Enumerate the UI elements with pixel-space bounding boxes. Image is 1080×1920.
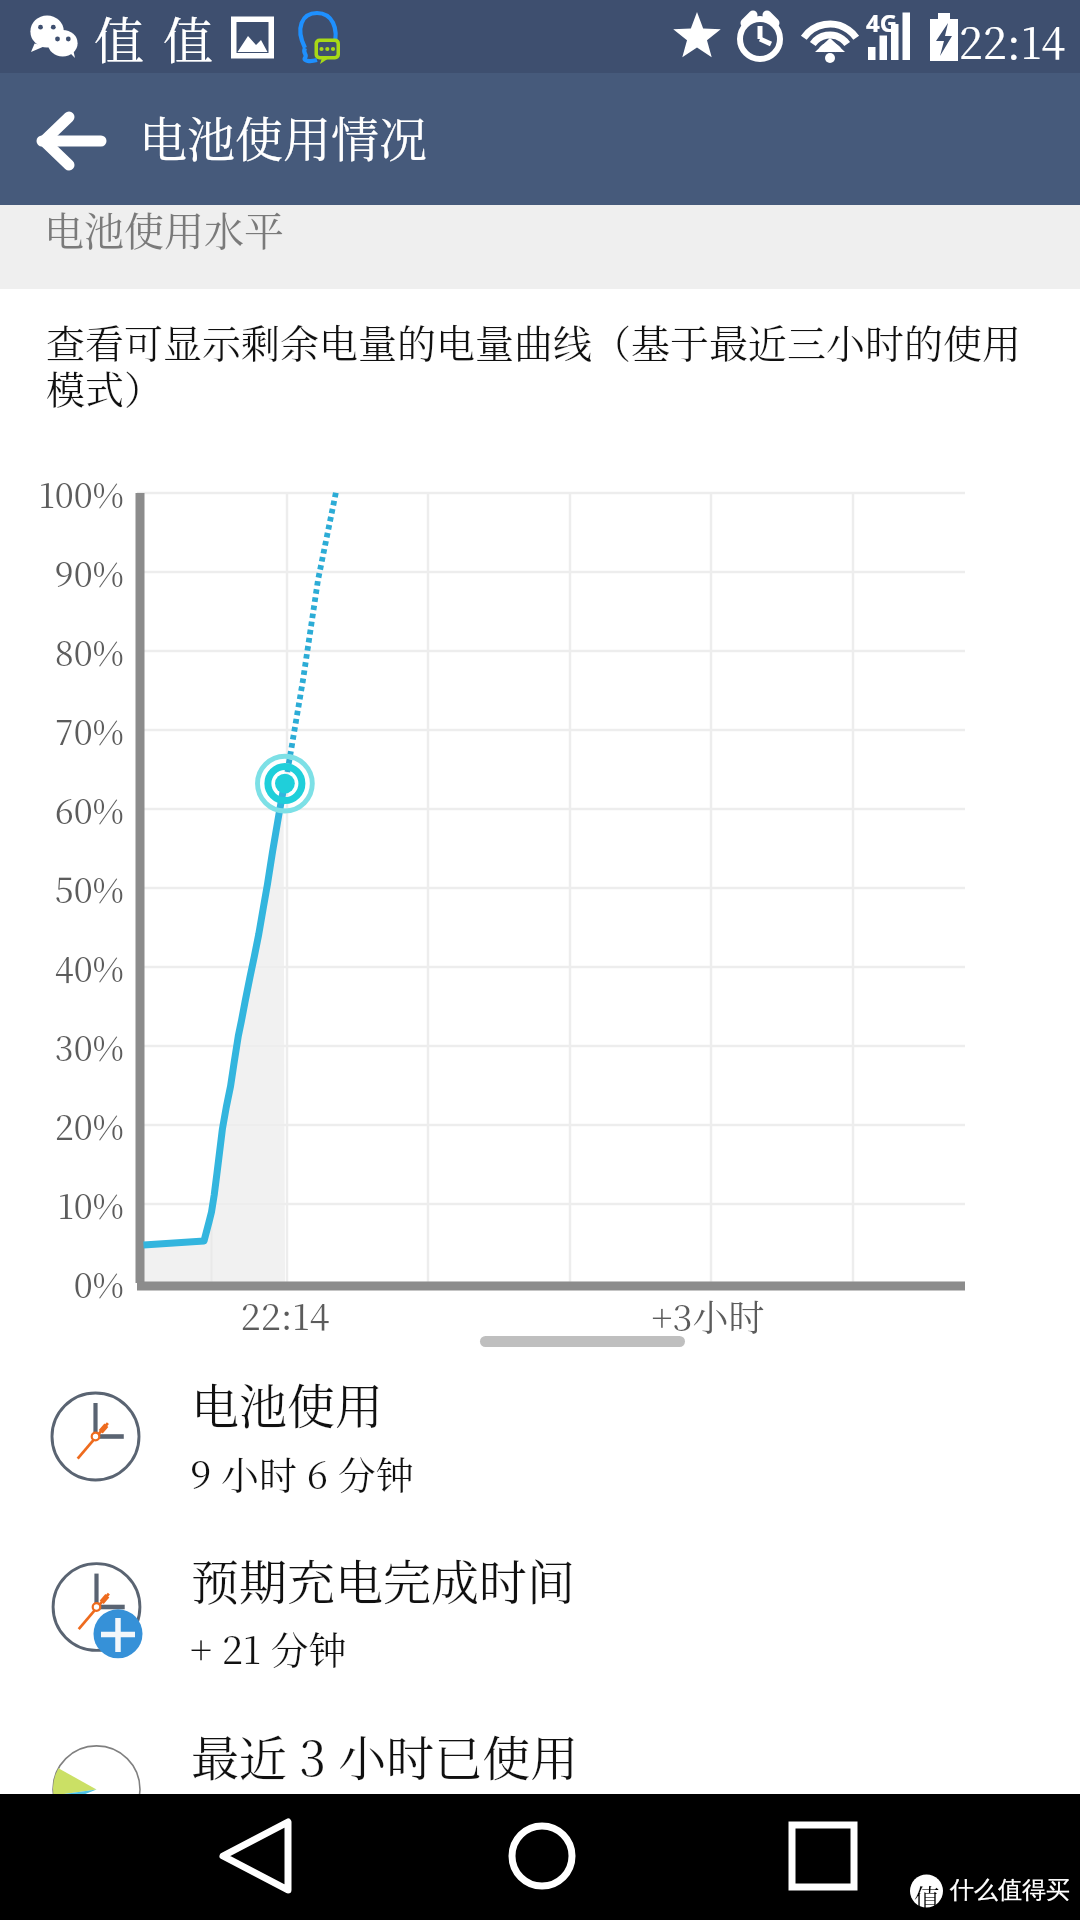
staticText: 20% — [0, 1101, 124, 1150]
staticText: 30% — [0, 1022, 124, 1071]
staticText: 值 — [163, 1, 213, 73]
staticText: 电池使用水平 — [44, 200, 284, 257]
staticText: 电池使用情况 — [139, 102, 428, 171]
staticText: 50% — [0, 864, 124, 913]
staticText: 22:14 — [905, 10, 1065, 72]
staticText: 22:14 — [180, 1289, 390, 1341]
button[interactable]: Recent apps — [720, 1794, 1080, 1920]
staticText: + 21 分钟 — [190, 1620, 347, 1675]
staticText: 80% — [0, 627, 124, 676]
staticText: 什么值得买 — [850, 1875, 1070, 1905]
staticText: 4G — [866, 6, 898, 39]
staticText: 90% — [0, 548, 124, 597]
button[interactable]: Back — [0, 1794, 360, 1920]
button[interactable]: 预期充电完成时间 — [0, 1523, 1080, 1693]
staticText: 值 — [94, 1, 144, 73]
button[interactable]: Back — [15, 80, 133, 198]
staticText: 值 — [911, 1878, 943, 1915]
staticText: 0% — [0, 1259, 124, 1308]
staticText: 预期充电完成时间 — [191, 1545, 576, 1614]
button[interactable]: Home — [360, 1794, 720, 1920]
staticText: 40% — [0, 943, 124, 992]
staticText: 10% — [0, 1180, 124, 1229]
staticText: 60% — [0, 785, 124, 834]
staticText: 电池使用 — [191, 1369, 384, 1438]
button[interactable]: 电池使用 — [0, 1347, 1080, 1517]
staticText: 最近 3 小时已使用 — [191, 1721, 579, 1790]
staticText: 100% — [0, 469, 124, 518]
staticText: 70% — [0, 706, 124, 755]
staticText: 查看可显示剩余电量的电量曲线（基于最近三小时的使用 模式） — [46, 313, 1022, 415]
staticText: 9 小时 6 分钟 — [190, 1445, 414, 1500]
staticText: +3小时 — [593, 1290, 823, 1342]
button[interactable]: 最近 3 小时已使用 — [0, 1699, 1080, 1795]
